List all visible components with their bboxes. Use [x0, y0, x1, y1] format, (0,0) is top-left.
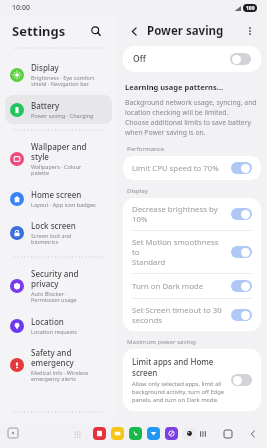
- staticText: Security and privacy: [31, 268, 79, 289]
- staticText: Power saving: [147, 23, 224, 39]
- staticText: Learning usage patterns...: [125, 82, 224, 92]
- button[interactable]: Safety and emergency: [5, 342, 112, 388]
- staticText: Battery: [31, 100, 60, 111]
- button[interactable]: card: [93, 427, 106, 440]
- button[interactable]: Decrease brightness by 10%: [123, 198, 261, 230]
- staticText: Limit CPU speed to 70%: [132, 163, 225, 174]
- button[interactable]: Recent capture: [6, 426, 20, 440]
- button[interactable]: Limit CPU speed to 70%: [123, 156, 261, 180]
- staticText: 10:00: [12, 3, 30, 13]
- staticText: Brightness · Eye comfort shield · Naviga…: [31, 74, 95, 88]
- staticText: Home screen: [31, 189, 82, 200]
- button[interactable]: On: [231, 309, 252, 321]
- button[interactable]: mail: [147, 427, 160, 440]
- staticText: Maximum power saving: [127, 338, 196, 346]
- staticText: 100: [246, 5, 255, 12]
- button[interactable]: Back: [125, 22, 143, 40]
- button[interactable]: Turn on Dark mode: [123, 274, 261, 298]
- staticText: Background network usage, syncing, and l…: [125, 98, 257, 137]
- button[interactable]: browser: [165, 427, 178, 440]
- staticText: Location: [31, 316, 64, 327]
- button[interactable]: Set Motion smoothness to Standard: [123, 231, 261, 273]
- staticText: Off: [133, 53, 146, 65]
- button[interactable]: phone: [129, 427, 142, 440]
- staticText: Auto Blocker · Permission usage: [31, 290, 77, 304]
- button[interactable]: Recents: [196, 427, 209, 440]
- button[interactable]: Set Screen timeout to 30 seconds: [123, 299, 261, 331]
- staticText: Display: [31, 62, 59, 73]
- button[interactable]: Home screen: [5, 184, 112, 213]
- button[interactable]: On: [231, 246, 252, 258]
- button[interactable]: Off: [123, 46, 261, 72]
- staticText: Set Screen timeout to 30 seconds: [132, 305, 225, 325]
- button[interactable]: Home: [221, 427, 234, 440]
- staticText: Layout · App icon badges: [31, 201, 96, 208]
- staticText: Set Motion smoothness to Standard: [132, 237, 225, 267]
- staticText: Power saving · Charging: [31, 112, 94, 119]
- button[interactable]: Off: [230, 53, 251, 65]
- button[interactable]: On: [231, 280, 252, 292]
- staticText: Wallpapers · Colour palette: [31, 163, 82, 177]
- staticText: Wallpaper and style: [31, 141, 87, 162]
- staticText: Lock screen: [31, 220, 76, 231]
- staticText: Screen lock and biometrics: [31, 232, 72, 246]
- button[interactable]: camera: [183, 427, 196, 440]
- staticText: Medical info · Wireless emergency alerts: [31, 369, 89, 383]
- button[interactable]: Wallpaper and style: [5, 136, 112, 182]
- button[interactable]: Limit apps and Home screen: [123, 349, 261, 411]
- button[interactable]: Lock screen: [5, 215, 112, 251]
- staticText: Decrease brightness by 10%: [132, 204, 225, 224]
- button[interactable]: Display: [5, 57, 112, 93]
- staticText: Allow only selected apps, limit all back…: [132, 380, 225, 404]
- staticText: Location requests: [31, 328, 77, 335]
- button[interactable]: On: [231, 208, 252, 220]
- button[interactable]: On: [231, 162, 252, 174]
- staticText: Settings: [12, 22, 66, 40]
- button[interactable]: Search: [87, 22, 105, 40]
- staticText: Safety and emergency: [31, 347, 74, 368]
- button[interactable]: Off: [231, 374, 252, 386]
- staticText: Performance: [127, 145, 165, 153]
- button[interactable]: Battery: [5, 95, 112, 124]
- staticText: Limit apps and Home screen: [132, 356, 225, 378]
- button[interactable]: Security and privacy: [5, 263, 112, 309]
- staticText: Display: [127, 187, 148, 195]
- staticText: Turn on Dark mode: [132, 281, 225, 292]
- button[interactable]: More options: [241, 22, 259, 40]
- button[interactable]: Back: [246, 427, 259, 440]
- button[interactable]: All apps: [72, 429, 82, 439]
- button[interactable]: folder: [111, 427, 124, 440]
- button[interactable]: Location: [5, 311, 112, 340]
